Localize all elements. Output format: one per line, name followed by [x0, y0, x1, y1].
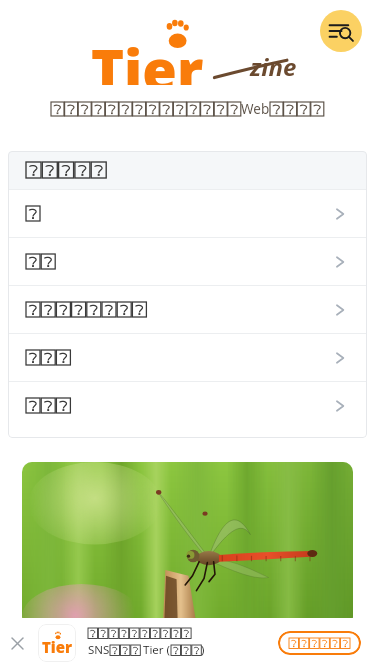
button[interactable] [8, 238, 367, 285]
button[interactable]: Tier app icon [38, 624, 76, 662]
button[interactable] [8, 334, 367, 381]
button[interactable] [278, 631, 361, 655]
button[interactable]: Dragonfly article photo [22, 462, 353, 627]
staticText: SNS [88, 642, 110, 658]
staticText: Tier [42, 637, 73, 657]
button[interactable]: Menu and search [320, 10, 362, 52]
staticText: ) [201, 642, 205, 658]
staticText: Tier ( [140, 642, 171, 658]
button[interactable]: Close ad [0, 626, 34, 660]
staticText: Tier [91, 31, 204, 85]
staticText: Web [241, 100, 270, 118]
button[interactable] [8, 190, 367, 237]
staticText: zine [250, 50, 297, 83]
button[interactable] [8, 382, 367, 429]
button[interactable] [8, 286, 367, 333]
